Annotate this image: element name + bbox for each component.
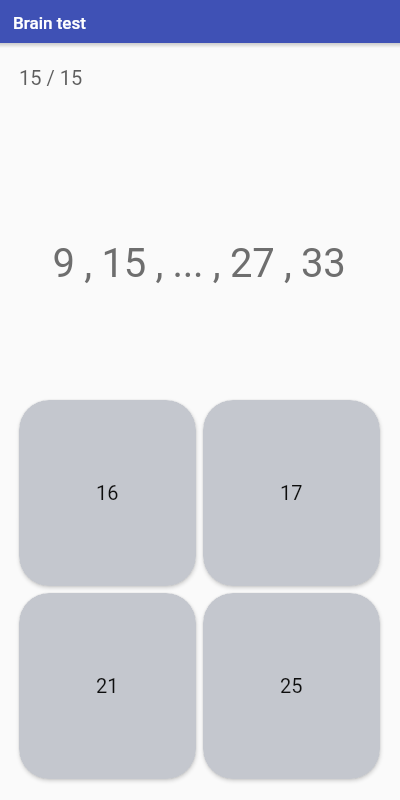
staticText: 21 bbox=[96, 674, 119, 697]
staticText: Brain test bbox=[13, 13, 86, 33]
staticText: 16 bbox=[96, 481, 119, 504]
staticText: 25 bbox=[280, 674, 303, 697]
staticText: 17 bbox=[280, 481, 303, 504]
button[interactable]: 16 bbox=[19, 400, 196, 586]
staticText: 15 / 15 bbox=[19, 66, 83, 89]
button[interactable]: 25 bbox=[203, 593, 380, 779]
button[interactable]: 17 bbox=[203, 400, 380, 586]
button[interactable]: 21 bbox=[19, 593, 196, 779]
staticText: 9 , 15 , ... , 27 , 33 bbox=[0, 240, 399, 287]
